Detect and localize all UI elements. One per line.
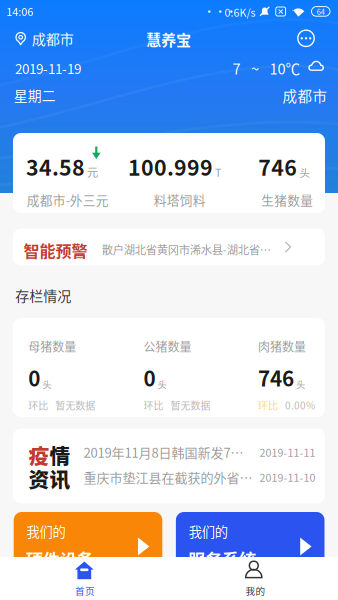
staticText: 服务系统 — [188, 546, 256, 572]
button[interactable]: 我们的 — [14, 512, 162, 574]
staticText: 2019-11-10 — [259, 469, 315, 485]
staticText: 环比 — [258, 398, 278, 412]
button[interactable]: 消息 — [290, 23, 321, 54]
staticText: 成都市-外三元 — [27, 191, 109, 209]
staticText: 头 — [42, 377, 51, 391]
staticText: 我的 — [245, 584, 265, 597]
staticText: 746 — [258, 362, 294, 392]
staticText: 2019-11-19 — [15, 58, 81, 78]
staticText: 智能预警 — [23, 239, 87, 262]
staticText: 我们的 — [189, 521, 228, 541]
button[interactable]: 首页 — [19, 557, 133, 600]
staticText: 0 — [143, 362, 155, 392]
staticText: 746 — [258, 151, 297, 182]
staticText: 生猪数量 — [261, 191, 313, 209]
staticText: ~ — [251, 58, 259, 79]
staticText: 我们的 — [26, 521, 65, 541]
staticText: 重庆市垫江县在截获的外省… — [84, 467, 253, 486]
staticText: ••• — [203, 3, 236, 19]
staticText: 64 — [317, 6, 325, 17]
button[interactable]: 我的 — [189, 557, 303, 600]
staticText: 料塔饲料 — [154, 191, 206, 209]
staticText: 慧养宝 — [146, 28, 191, 50]
staticText: 环比 — [143, 398, 163, 412]
staticText: 0.00% — [285, 398, 315, 412]
staticText: 0.6K/s — [224, 4, 255, 20]
staticText: 成都市 — [32, 28, 74, 48]
staticText: 暂无数据 — [170, 398, 210, 412]
staticText: 7 — [233, 58, 241, 79]
staticText: 元 — [87, 164, 98, 180]
staticText: 暂无数据 — [55, 398, 95, 412]
staticText: T — [215, 164, 221, 180]
staticText: 环比 — [28, 398, 48, 412]
staticText: 情 — [49, 440, 70, 470]
staticText: 0 — [28, 362, 40, 392]
staticText: 100.999 — [128, 151, 213, 182]
staticText: 存栏情况 — [15, 285, 71, 305]
button[interactable]: 我们的 — [176, 512, 324, 574]
button[interactable]: 成都市 — [0, 21, 84, 55]
staticText: 首页 — [75, 584, 95, 597]
staticText: 散户湖北省黄冈市浠水县-湖北省… — [102, 241, 271, 257]
staticText: 2019年11月8日韩国新发7… — [84, 442, 244, 461]
button[interactable]: 重庆市垫江县在截获的外省… — [84, 464, 315, 489]
staticText: 星期二 — [14, 85, 56, 105]
button[interactable]: 2019年11月8日韩国新发7… — [84, 439, 315, 464]
button[interactable]: 智能预警 — [13, 228, 325, 265]
staticText: 公猪数量 — [143, 337, 191, 355]
staticText: 头 — [299, 165, 309, 180]
staticText: 硬件设备 — [26, 546, 94, 572]
staticText: 2019-11-11 — [259, 444, 315, 460]
staticText: 14:06 — [6, 3, 33, 19]
staticText: 疫 — [28, 440, 49, 470]
staticText: 母猪数量 — [28, 337, 76, 355]
staticText: 10℃ — [269, 58, 300, 79]
staticText: 34.58 — [26, 151, 85, 182]
staticText: 头 — [296, 377, 305, 391]
staticText: 头 — [157, 377, 166, 391]
staticText: 成都市 — [283, 85, 328, 106]
staticText: 肉猪数量 — [258, 337, 306, 355]
staticText: 资讯 — [28, 463, 70, 493]
